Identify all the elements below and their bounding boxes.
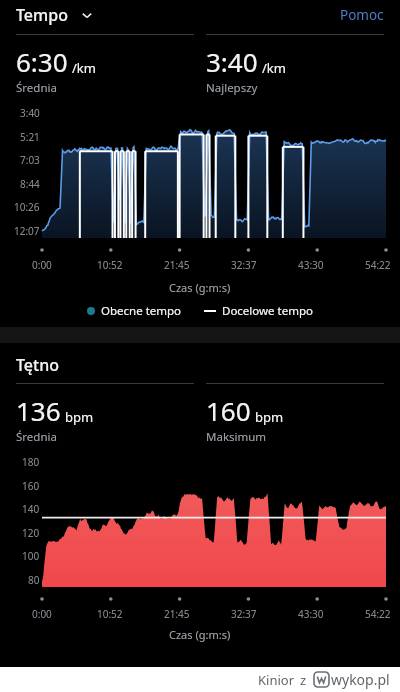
staticText: 21:45	[164, 607, 190, 621]
staticText: Średnia	[16, 80, 57, 96]
button[interactable]: Tętno	[16, 353, 384, 377]
staticText: 180	[22, 455, 40, 469]
staticText: 10:26	[14, 200, 40, 214]
staticText: 5:21	[20, 130, 40, 144]
staticText: 6:30	[16, 44, 68, 79]
staticText: 10:52	[97, 607, 123, 621]
button[interactable]: Tempo	[16, 4, 94, 26]
staticText: 140	[22, 502, 40, 516]
staticText: z	[300, 671, 307, 689]
staticText: bpm	[65, 408, 94, 426]
staticText: 54:22	[365, 607, 391, 621]
staticText: 7:03	[20, 153, 40, 167]
staticText: 3:40	[20, 106, 40, 120]
staticText: Czas (g:m:s)	[169, 280, 231, 295]
staticText: 160	[22, 479, 40, 493]
staticText: 0:00	[32, 258, 52, 272]
staticText: Kinior	[258, 671, 295, 689]
staticText: 54:22	[365, 258, 391, 272]
staticText: 8:44	[20, 177, 40, 191]
staticText: 32:37	[231, 607, 257, 621]
staticText: Średnia	[16, 429, 57, 445]
staticText: 21:45	[164, 258, 190, 272]
staticText: 3:40	[206, 44, 258, 79]
staticText: Docelowe tempo	[222, 303, 313, 319]
staticText: 0:00	[32, 607, 52, 621]
staticText: /km	[262, 59, 286, 77]
staticText: 32:37	[231, 258, 257, 272]
staticText: Tempo	[16, 4, 68, 26]
staticText: 10:52	[97, 258, 123, 272]
staticText: 160	[206, 393, 251, 428]
staticText: 12:07	[14, 224, 40, 238]
staticText: 100	[22, 549, 40, 563]
staticText: /km	[72, 59, 96, 77]
staticText: Obecne tempo	[101, 303, 182, 319]
staticText: 80	[28, 573, 40, 587]
staticText: Tętno	[16, 354, 59, 376]
staticText: Najlepszy	[206, 80, 258, 96]
staticText: bpm	[255, 408, 284, 426]
staticText: 43:30	[298, 607, 324, 621]
staticText: Pomoc	[340, 6, 384, 24]
staticText: 120	[22, 526, 40, 540]
staticText: 136	[16, 393, 61, 428]
button[interactable]: Pomoc	[340, 6, 384, 24]
staticText: 43:30	[298, 258, 324, 272]
staticText: wykop.pl	[331, 670, 390, 689]
staticText: Maksimum	[206, 429, 267, 445]
staticText: Czas (g:m:s)	[169, 627, 231, 642]
